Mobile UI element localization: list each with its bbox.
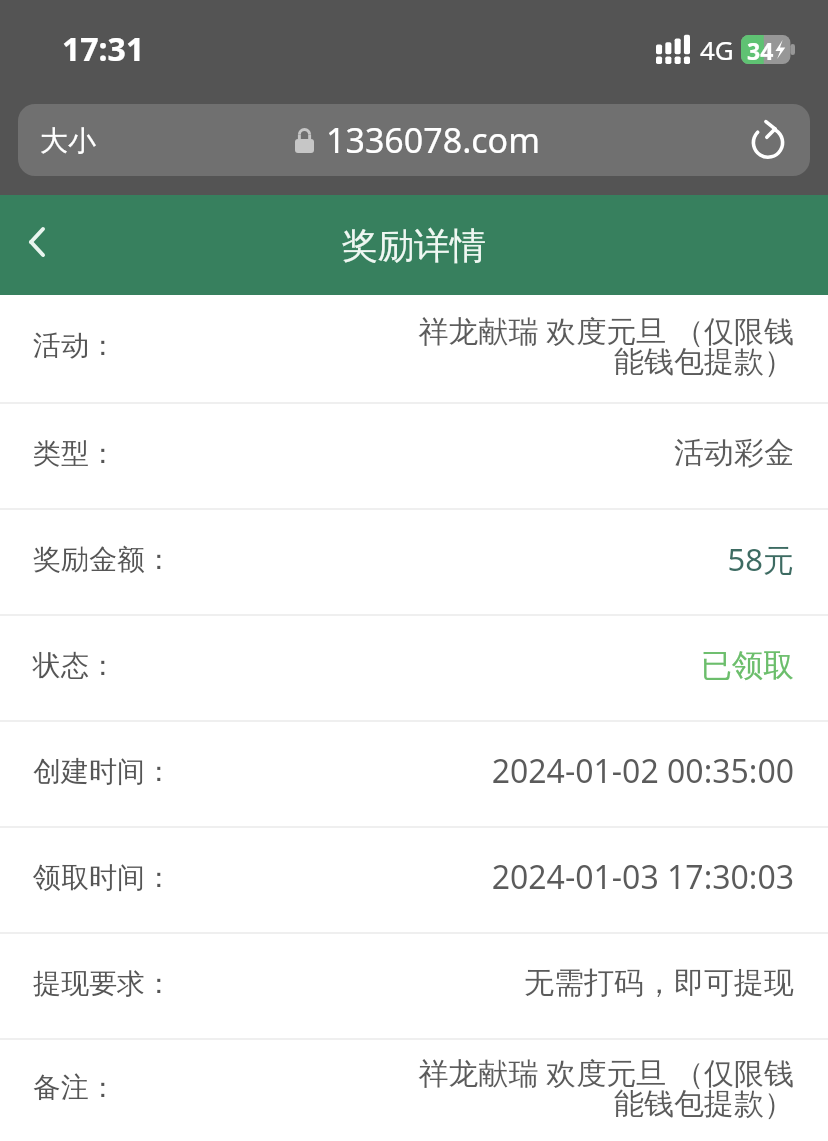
staticText: 创建时间： bbox=[33, 754, 173, 789]
staticText: 活动： bbox=[33, 328, 117, 363]
staticText: 17:31 bbox=[62, 27, 145, 71]
button[interactable]: 创建时间： bbox=[0, 722, 828, 826]
staticText: 58元 bbox=[727, 538, 794, 580]
staticText: 奖励金额： bbox=[33, 542, 173, 577]
staticText: 大小 bbox=[40, 123, 96, 158]
staticText: 34 bbox=[747, 35, 774, 64]
button[interactable]: Back bbox=[5, 210, 69, 274]
staticText: 备注： bbox=[33, 1070, 117, 1105]
button[interactable]: 大小 bbox=[18, 104, 810, 176]
staticText: 2024-01-02 00:35:00 bbox=[491, 749, 794, 793]
button[interactable]: 类型： bbox=[0, 404, 828, 508]
button[interactable]: 奖励金额： bbox=[0, 510, 828, 614]
button[interactable]: Reload bbox=[747, 119, 789, 161]
staticText: 4G bbox=[700, 32, 734, 67]
button[interactable]: 活动： bbox=[0, 295, 828, 402]
button[interactable]: 备注： bbox=[0, 1040, 828, 1141]
button[interactable]: 提现要求： bbox=[0, 934, 828, 1038]
staticText: 活动彩金 bbox=[674, 434, 794, 472]
staticText: 2024-01-03 17:30:03 bbox=[491, 855, 794, 899]
staticText: 已领取 bbox=[701, 646, 794, 685]
staticText: 祥龙献瑞 欢度元旦 （仅限钱能钱包提款） bbox=[413, 310, 794, 381]
staticText: 类型： bbox=[33, 436, 117, 471]
staticText: 领取时间： bbox=[33, 860, 173, 895]
staticText: 无需打码，即可提现 bbox=[524, 964, 794, 1002]
staticText: 1336078.com bbox=[326, 117, 540, 163]
button[interactable]: 状态： bbox=[0, 616, 828, 720]
staticText: 祥龙献瑞 欢度元旦 （仅限钱能钱包提款） bbox=[413, 1052, 794, 1123]
staticText: 奖励详情 bbox=[342, 223, 486, 268]
button[interactable]: 领取时间： bbox=[0, 828, 828, 932]
staticText: 状态： bbox=[33, 648, 117, 683]
staticText: 提现要求： bbox=[33, 966, 173, 1001]
